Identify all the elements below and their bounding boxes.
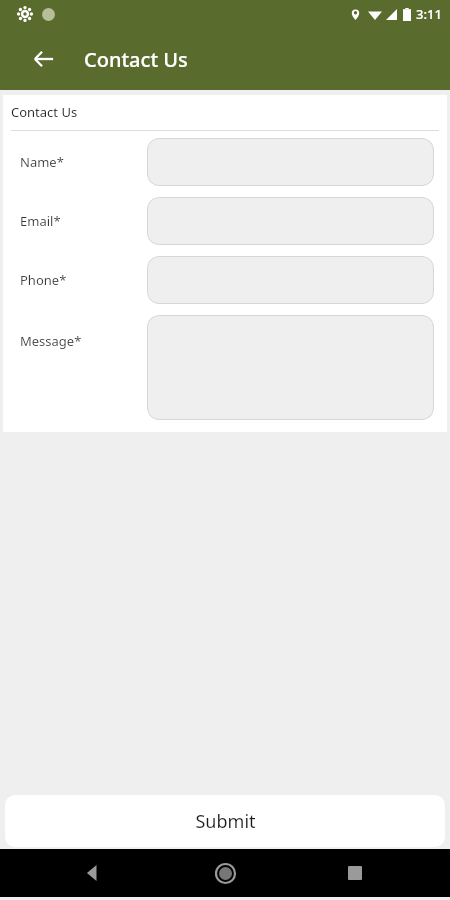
staticText: Name*	[20, 153, 64, 171]
button[interactable]: Name*	[3, 138, 447, 186]
staticText: Submit	[195, 809, 256, 834]
staticText: 3:11	[416, 5, 442, 23]
staticText: Message*	[20, 332, 82, 350]
button[interactable]: Back	[20, 35, 68, 83]
button[interactable]: Home	[204, 852, 246, 894]
button[interactable]: Submit	[5, 795, 445, 847]
staticText: Contact Us	[11, 103, 78, 121]
staticText: Phone*	[20, 271, 67, 289]
button[interactable]: Email*	[3, 197, 447, 245]
button[interactable]: Message*	[3, 315, 447, 420]
button[interactable]: Recent apps	[334, 852, 376, 894]
staticText: Contact Us	[84, 46, 188, 73]
button[interactable]: Phone*	[3, 256, 447, 304]
button[interactable]: Back	[72, 852, 114, 894]
staticText: Email*	[20, 212, 61, 230]
